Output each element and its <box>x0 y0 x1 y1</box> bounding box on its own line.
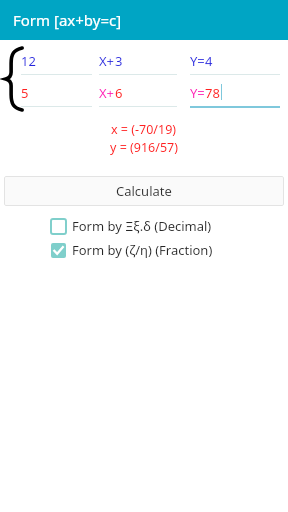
staticText: 12 <box>21 52 36 70</box>
staticText: X+ <box>99 52 115 70</box>
button[interactable]: Calculate <box>4 176 284 206</box>
button[interactable]: X+ <box>99 50 177 76</box>
staticText: Form by (ζ/η) (Fraction) <box>72 241 213 259</box>
staticText: 4 <box>205 52 213 70</box>
staticText: Calculate <box>116 182 172 200</box>
staticText: Form [ax+by=c] <box>13 10 122 30</box>
staticText: 78 <box>205 84 220 102</box>
staticText: y = (916/57) <box>110 139 178 156</box>
button[interactable]: Y= <box>190 50 280 76</box>
button[interactable]: Form by (ζ/η) (Fraction) <box>0 238 288 262</box>
button[interactable]: 12 <box>21 50 92 76</box>
staticText: Y= <box>190 84 205 102</box>
button[interactable]: 5 <box>21 82 92 108</box>
button[interactable]: Y= <box>190 82 280 108</box>
staticText: 6 <box>115 84 123 102</box>
button[interactable]: X+ <box>99 82 177 108</box>
staticText: Y= <box>190 52 205 70</box>
staticText: Form by Ξξ.δ (Decimal) <box>72 217 212 235</box>
other: System of equations brace <box>5 48 23 110</box>
staticText: x = (-70/19) <box>111 121 177 138</box>
button[interactable]: Form by Ξξ.δ (Decimal) <box>0 214 288 238</box>
staticText: 5 <box>21 84 29 102</box>
staticText: X+ <box>99 84 115 102</box>
staticText: 3 <box>115 52 123 70</box>
